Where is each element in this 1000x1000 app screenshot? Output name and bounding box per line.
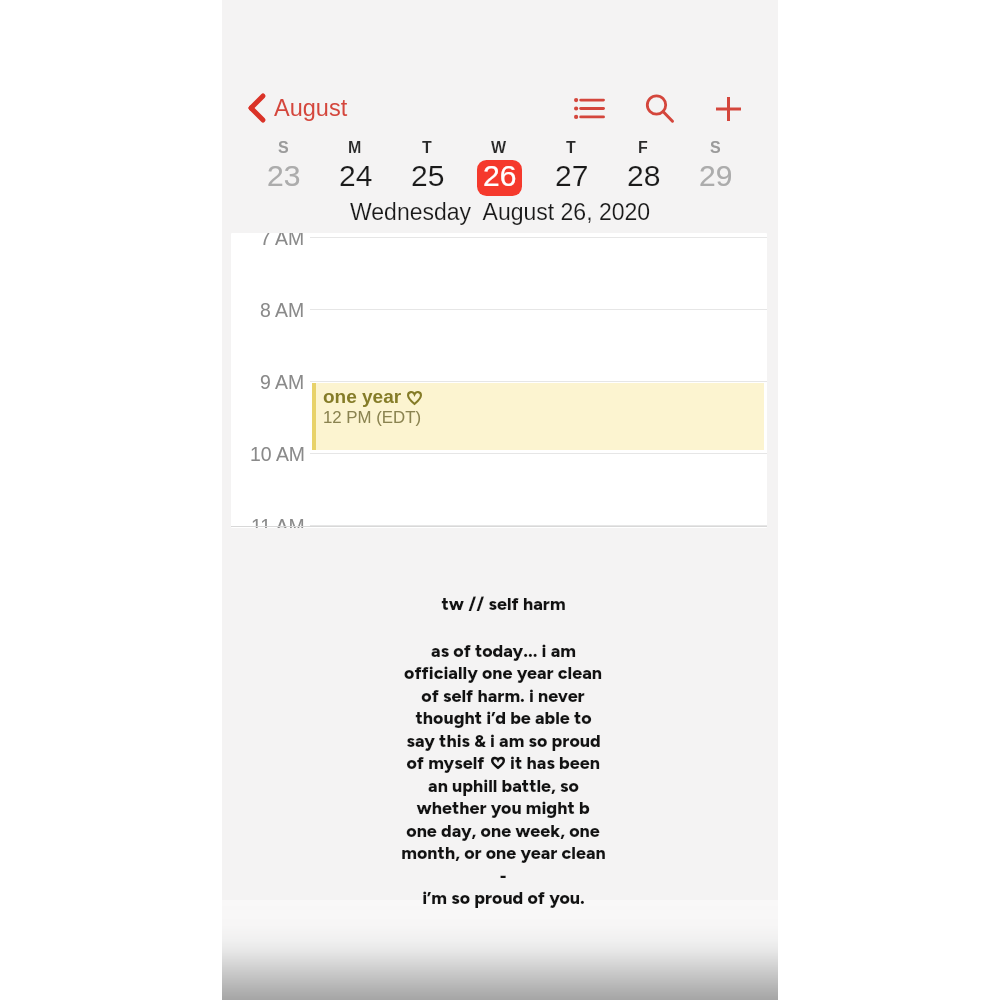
button[interactable]: August	[246, 87, 350, 129]
staticText: Wednesday August 26, 2020	[350, 199, 651, 225]
staticText: 11 AM	[251, 515, 305, 528]
staticText: one year	[323, 386, 407, 407]
staticText: 9 AM	[260, 371, 305, 393]
staticText: M	[348, 139, 362, 157]
staticText: S	[710, 139, 721, 157]
button[interactable]: Search	[630, 85, 690, 133]
staticText: S	[278, 139, 289, 157]
staticText: 25	[411, 159, 445, 193]
staticText: 8 AM	[260, 299, 305, 321]
button[interactable]: List view	[559, 85, 619, 133]
button[interactable]: F	[612, 139, 674, 194]
staticText: say this & i am so proud	[406, 730, 601, 751]
staticText: T	[422, 139, 432, 157]
button[interactable]: T	[540, 139, 602, 194]
staticText: 12 PM (EDT)	[323, 408, 421, 427]
staticText: 28	[627, 159, 661, 193]
staticText: one day, one week, one	[406, 820, 600, 841]
staticText: 23	[267, 159, 301, 193]
staticText: 24	[339, 159, 373, 193]
staticText: whether you might b	[416, 797, 590, 818]
staticText: W	[491, 139, 507, 157]
staticText: of self harm. i never	[421, 685, 585, 706]
staticText: 10 AM	[250, 443, 305, 465]
staticText: an uphill battle, so	[428, 775, 579, 796]
staticText: tw // self harm	[441, 593, 566, 614]
button[interactable]: S	[252, 139, 314, 194]
staticText: 7 AM	[260, 233, 305, 249]
staticText: T	[566, 139, 576, 157]
button[interactable]: T	[396, 139, 458, 194]
staticText: officially one year clean	[404, 662, 602, 683]
button[interactable]: M	[324, 139, 386, 194]
staticText: it has been	[510, 752, 600, 773]
staticText: 26	[483, 159, 517, 193]
staticText: of myself	[406, 752, 485, 773]
button[interactable]: S	[684, 139, 746, 194]
button[interactable]: W	[468, 139, 530, 194]
staticText: F	[638, 139, 648, 157]
staticText: August	[274, 95, 348, 121]
staticText: 27	[555, 159, 589, 193]
staticText: as of today... i am	[431, 640, 576, 661]
staticText: -	[499, 865, 507, 886]
staticText: 29	[699, 159, 733, 193]
button[interactable]: Add event	[698, 85, 758, 133]
staticText: month, or one year clean	[401, 842, 606, 863]
staticText: thought i’d be able to	[415, 707, 592, 728]
staticText: i’m so proud of you.	[422, 887, 585, 908]
